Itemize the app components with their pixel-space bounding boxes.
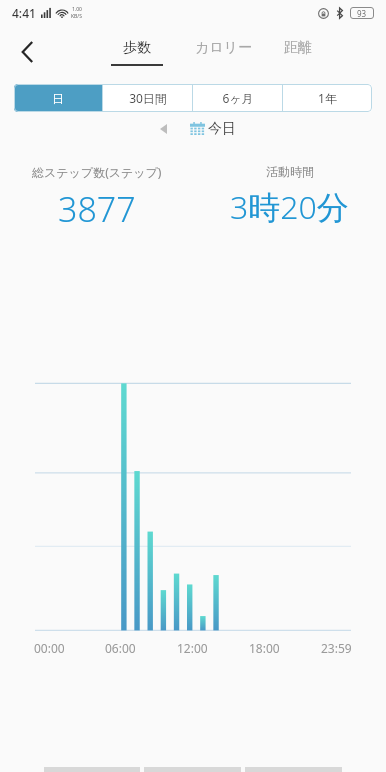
button[interactable]: 6ヶ月 [193,84,282,112]
staticText: 3877 [58,186,136,232]
staticText: カロリー [195,39,252,57]
button[interactable]: 30日間 [103,84,192,112]
staticText: 活動時間 [266,164,314,179]
staticText: 日 [52,91,64,106]
staticText: 12:00 [177,640,208,656]
staticText: 18:00 [249,640,280,656]
staticText: 4:41 [12,5,36,21]
button[interactable]: Back [8,32,48,72]
button[interactable]: 距離 [282,39,314,66]
button[interactable]: カロリー [193,39,254,66]
button[interactable]: 歩数 [109,39,165,66]
button[interactable]: Previous day [150,116,176,142]
staticText: 総ステップ数(ステップ) [32,164,162,180]
staticText: 今日 [208,120,236,138]
staticText: 6ヶ月 [222,90,254,106]
staticText: 1.00 [72,6,82,13]
staticText: 93 [357,8,367,19]
staticText: 23:59 [321,640,352,656]
button[interactable]: 1年 [283,84,372,112]
button[interactable]: 日 [14,84,102,112]
staticText: 3時20分 [230,185,349,229]
staticText: 歩数 [123,39,151,57]
staticText: KB/S [71,13,82,20]
staticText: 06:00 [105,640,136,656]
staticText: 1年 [318,90,337,106]
staticText: 00:00 [34,640,65,656]
button[interactable]: 今日 [190,120,236,138]
staticText: 距離 [284,39,312,57]
staticText: 30日間 [129,90,167,106]
